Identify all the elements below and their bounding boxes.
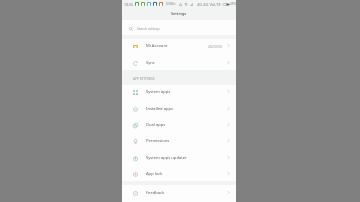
staticText: System apps updater <box>146 155 187 161</box>
staticText: APP SETTINGS <box>133 77 155 81</box>
staticText: Feedback <box>146 190 165 196</box>
staticText: System apps <box>146 89 171 95</box>
staticText: App lock <box>146 171 163 177</box>
staticText: Installed apps <box>146 106 173 112</box>
button[interactable]: App lock <box>122 166 236 182</box>
staticText: Settings <box>171 11 187 16</box>
staticText: 18:34 <box>124 2 133 7</box>
button[interactable]: Mi Account <box>122 38 236 54</box>
staticText: 45% <box>230 2 236 6</box>
button[interactable]: Search settings <box>122 20 236 35</box>
button[interactable]: System apps <box>122 84 236 100</box>
staticText: 0.00K/s <box>166 2 176 6</box>
staticText: Dual apps <box>146 122 166 128</box>
button[interactable]: Sync <box>122 55 236 71</box>
staticText: Sync <box>146 60 155 66</box>
button[interactable]: Dual apps <box>122 117 236 133</box>
button[interactable]: System apps updater <box>122 150 236 166</box>
staticText: Mi Account <box>146 43 168 49</box>
staticText: Search settings <box>137 27 160 31</box>
staticText: Permissions <box>146 138 170 144</box>
staticText: 4825050 <box>208 44 223 49</box>
button[interactable]: Permissions <box>122 133 236 149</box>
button[interactable]: Feedback <box>122 185 236 201</box>
button[interactable]: Installed apps <box>122 101 236 117</box>
staticText: 4G 4G VoLTE <box>197 2 221 7</box>
